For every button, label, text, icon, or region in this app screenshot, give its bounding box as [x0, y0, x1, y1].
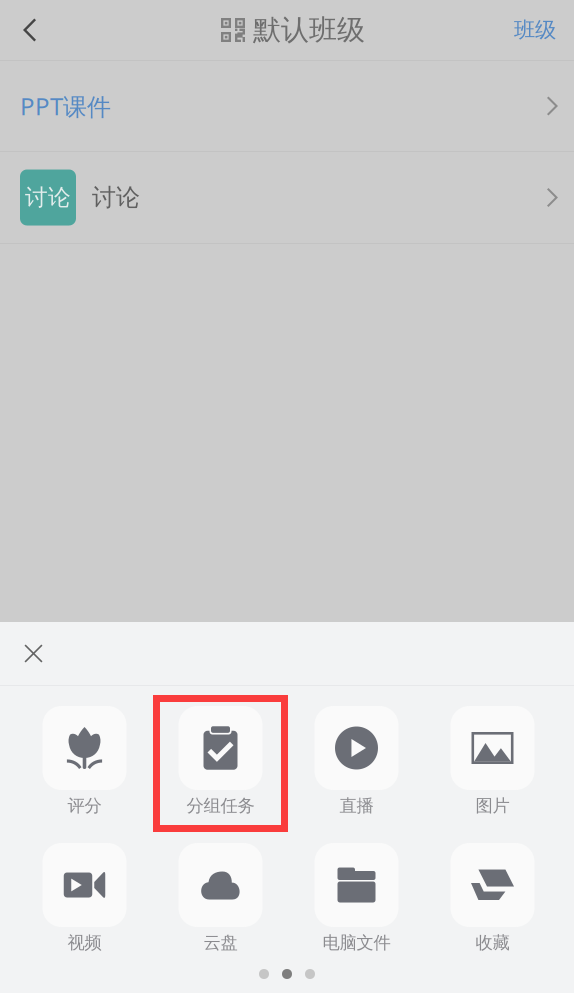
button[interactable]: 收藏 — [424, 832, 560, 969]
button[interactable]: 视频 — [16, 832, 152, 969]
staticText: 分组任务 — [186, 795, 254, 816]
staticText: 直播 — [339, 795, 373, 816]
button[interactable]: 直播 — [288, 695, 424, 832]
button[interactable]: 图片 — [424, 695, 560, 832]
staticText: 班级 — [514, 17, 556, 43]
staticText: PPT课件 — [20, 90, 111, 122]
button[interactable]: 分组任务 — [152, 695, 288, 832]
staticText: 收藏 — [475, 932, 509, 953]
staticText: 视频 — [67, 932, 101, 953]
button[interactable]: 评分 — [16, 695, 152, 832]
button[interactable]: Back — [0, 0, 59, 60]
staticText: 电脑文件 — [322, 932, 390, 953]
staticText: 讨论 — [92, 183, 140, 212]
button[interactable]: Close — [0, 622, 67, 685]
button[interactable]: 讨论 — [0, 152, 574, 243]
staticText: 云盘 — [203, 932, 237, 953]
staticText: 评分 — [67, 795, 101, 816]
staticText: 图片 — [475, 795, 509, 816]
button[interactable]: 云盘 — [152, 832, 288, 969]
button[interactable]: 电脑文件 — [288, 832, 424, 969]
button[interactable]: PPT课件 — [0, 61, 574, 151]
button[interactable]: 班级 — [496, 0, 574, 60]
staticText: 讨论 — [25, 184, 71, 211]
staticText: 默认班级 — [253, 13, 365, 47]
